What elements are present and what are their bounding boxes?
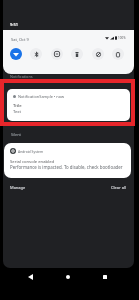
button[interactable]: Android System (4, 143, 131, 178)
staticText: Manage (10, 185, 26, 190)
staticText: Clear all (111, 185, 127, 190)
staticText: 100% (118, 36, 126, 40)
button[interactable]: Recents (97, 269, 113, 285)
staticText: Sat, Oct 9 (11, 37, 29, 42)
staticText: Notifications (10, 74, 33, 79)
button[interactable]: Manage (6, 181, 30, 194)
button[interactable]: NotificationSample • now (7, 89, 130, 121)
staticText: Title (13, 103, 22, 109)
staticText: 9:51 (10, 22, 18, 27)
staticText: Silent (11, 132, 21, 137)
button[interactable]: Back (22, 269, 38, 285)
staticText: NotificationSample • now (18, 94, 65, 99)
staticText: Text (13, 109, 22, 115)
staticText: Android System (18, 149, 44, 154)
button[interactable]: Bluetooth (30, 48, 42, 60)
button[interactable]: Do Not Disturb (51, 48, 63, 60)
staticText: Serial console enabled (10, 159, 55, 165)
button[interactable]: Home (60, 269, 76, 285)
staticText: Performance is impacted. To disable, che… (10, 164, 123, 170)
button[interactable]: Auto-rotate (92, 48, 104, 60)
button[interactable]: Wi-Fi (10, 48, 22, 60)
button[interactable]: Clear all (107, 181, 131, 194)
button[interactable]: Battery Saver (112, 48, 124, 60)
button[interactable]: Flashlight (71, 48, 83, 60)
